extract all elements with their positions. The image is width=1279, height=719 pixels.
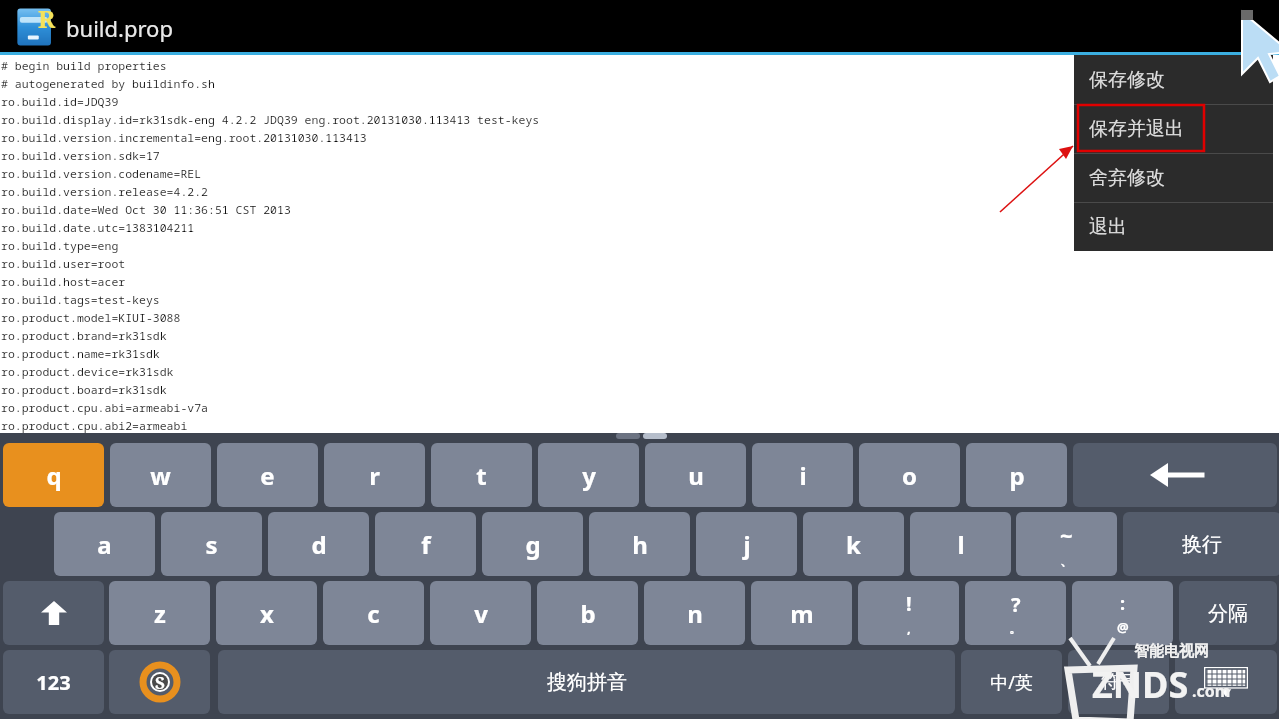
button[interactable]: Hide keyboard <box>1175 650 1277 714</box>
button[interactable]: a <box>54 512 155 576</box>
button[interactable]: l <box>910 512 1011 576</box>
button[interactable]: e <box>217 443 318 507</box>
staticText: , <box>907 619 911 637</box>
staticText: c <box>367 597 380 630</box>
staticText: q <box>46 459 62 492</box>
button[interactable]: 换行 <box>1123 512 1279 576</box>
staticText: r <box>369 459 380 492</box>
staticText: ~ <box>1060 520 1073 550</box>
staticText: y <box>582 459 596 492</box>
button[interactable]: c <box>323 581 424 645</box>
button[interactable]: k <box>803 512 904 576</box>
staticText: 中/英 <box>990 670 1033 695</box>
staticText: ro.build.display.id=rk31sdk-eng 4.2.2 JD… <box>1 112 540 128</box>
staticText: 搜狗拼音 <box>547 670 627 695</box>
staticText: ro.build.version.codename=REL <box>1 166 202 182</box>
staticText: ro.build.version.release=4.2.2 <box>1 184 208 200</box>
staticText: # Do not try to parse ro.build.descripti… <box>1 526 402 542</box>
staticText: x <box>260 597 274 630</box>
staticText: ro.build.version.incremental=eng.root.20… <box>1 130 367 146</box>
staticText: t <box>476 459 487 492</box>
staticText: w <box>150 459 171 492</box>
button[interactable]: u <box>645 443 746 507</box>
staticText: 。 <box>1009 620 1022 636</box>
staticText: z <box>154 597 166 630</box>
button[interactable]: Sogou input <box>109 650 210 714</box>
button[interactable]: g <box>482 512 583 576</box>
staticText: ? <box>1011 591 1021 618</box>
staticText: ro.product.name=rk31sdk <box>1 346 160 362</box>
button[interactable]: ! <box>858 581 959 645</box>
button[interactable]: p <box>966 443 1067 507</box>
button[interactable]: s <box>161 512 262 576</box>
staticText: i <box>799 459 807 492</box>
button[interactable]: Backspace <box>1073 443 1277 507</box>
staticText: 保存修改 <box>1089 68 1165 92</box>
button[interactable]: : <box>1072 581 1173 645</box>
button[interactable]: ? <box>965 581 1066 645</box>
staticText: S <box>155 671 165 694</box>
staticText: .com <box>1192 680 1231 702</box>
button[interactable]: m <box>751 581 852 645</box>
staticText: build.prop <box>66 13 173 43</box>
button[interactable]: n <box>644 581 745 645</box>
staticText: d <box>311 528 327 561</box>
staticText: o <box>902 459 917 492</box>
button[interactable]: h <box>589 512 690 576</box>
staticText: m <box>790 597 814 630</box>
staticText: # ro.build.product is obsolete; use ro.p… <box>1 490 367 506</box>
button[interactable]: v <box>430 581 531 645</box>
staticText: h <box>632 528 648 561</box>
staticText: ro.build.tags=test-keys <box>1 292 160 308</box>
staticText: f <box>421 528 431 561</box>
button[interactable]: w <box>110 443 211 507</box>
button[interactable]: Shift <box>3 581 104 645</box>
button[interactable]: 搜狗拼音 <box>218 650 955 714</box>
staticText: # begin build properties <box>1 58 167 74</box>
staticText: R <box>38 2 56 35</box>
staticText: 舍弃修改 <box>1089 166 1165 190</box>
button[interactable]: 退出 <box>1074 203 1273 251</box>
staticText: ro.product.board=rk31sdk <box>1 382 167 398</box>
staticText: ! <box>906 590 912 617</box>
staticText: k <box>846 528 861 561</box>
staticText: p <box>1009 459 1025 492</box>
button[interactable]: 保存修改 <box>1074 55 1273 104</box>
staticText: 、 <box>1060 552 1073 568</box>
button[interactable]: ~ <box>1016 512 1117 576</box>
button[interactable]: 中/英 <box>961 650 1062 714</box>
button[interactable]: 123 <box>3 650 104 714</box>
staticText: s <box>205 528 218 561</box>
button[interactable]: x <box>216 581 317 645</box>
staticText: ro.build.user=root <box>1 256 126 272</box>
button[interactable]: o <box>859 443 960 507</box>
staticText: ro.build.date.utc=1383104211 <box>1 220 195 236</box>
staticText: b <box>580 597 596 630</box>
button[interactable]: j <box>696 512 797 576</box>
staticText: g <box>525 528 541 561</box>
button[interactable]: z <box>109 581 210 645</box>
button[interactable]: f <box>375 512 476 576</box>
button[interactable]: y <box>538 443 639 507</box>
staticText: ZNDS <box>1092 660 1189 709</box>
button[interactable]: 舍弃修改 <box>1074 154 1273 202</box>
staticText: l <box>957 528 965 561</box>
button[interactable]: d <box>268 512 369 576</box>
staticText: @ <box>1117 618 1129 636</box>
staticText: ro.build.type=eng <box>1 238 119 254</box>
staticText: 智能电视网 <box>1134 642 1209 661</box>
button[interactable]: b <box>537 581 638 645</box>
button[interactable]: r <box>324 443 425 507</box>
staticText: v <box>474 597 488 630</box>
staticText: 保存并退出 <box>1089 117 1184 141</box>
button[interactable]: 符号 <box>1068 650 1169 714</box>
button[interactable]: 分隔 <box>1179 581 1277 645</box>
staticText: ro.product.device=rk31sdk <box>1 364 174 380</box>
button[interactable]: t <box>431 443 532 507</box>
button[interactable]: q <box>3 443 104 507</box>
button[interactable]: i <box>752 443 853 507</box>
staticText: 换行 <box>1182 532 1222 557</box>
staticText: ro.product.cpu.abi2=armeabi <box>1 418 188 434</box>
button[interactable]: 保存并退出 <box>1074 105 1273 153</box>
staticText: ro.board.platform=rk30xx <box>1 472 167 488</box>
